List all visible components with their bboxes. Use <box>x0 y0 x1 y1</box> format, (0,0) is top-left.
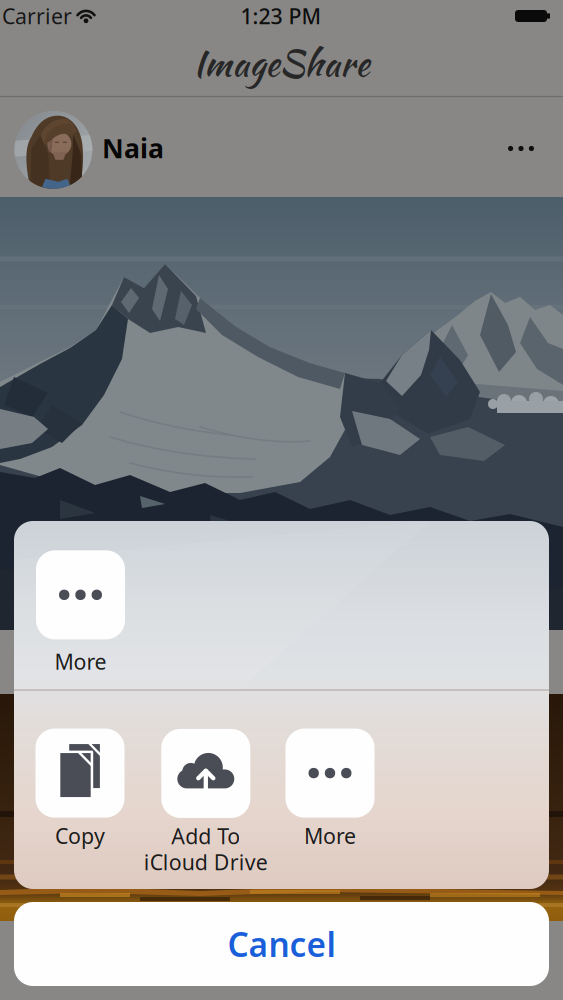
button[interactable]: Cancel <box>14 902 549 986</box>
staticText: ImageShare <box>193 37 370 89</box>
staticText: Naia <box>102 130 164 166</box>
button[interactable]: More options <box>499 126 543 170</box>
staticText: More <box>304 822 356 850</box>
staticText: iCloud Drive <box>144 848 268 876</box>
button[interactable]: More <box>285 729 374 850</box>
button[interactable]: Add To <box>144 729 268 876</box>
button[interactable]: More <box>36 550 125 676</box>
staticText: Copy <box>55 822 105 850</box>
staticText: More <box>54 647 106 676</box>
staticText: Add To <box>171 822 240 850</box>
staticText: 1:23 PM <box>240 2 321 30</box>
staticText: Cancel <box>227 922 335 966</box>
staticText: Carrier <box>2 2 72 30</box>
button[interactable]: Copy <box>35 729 124 850</box>
